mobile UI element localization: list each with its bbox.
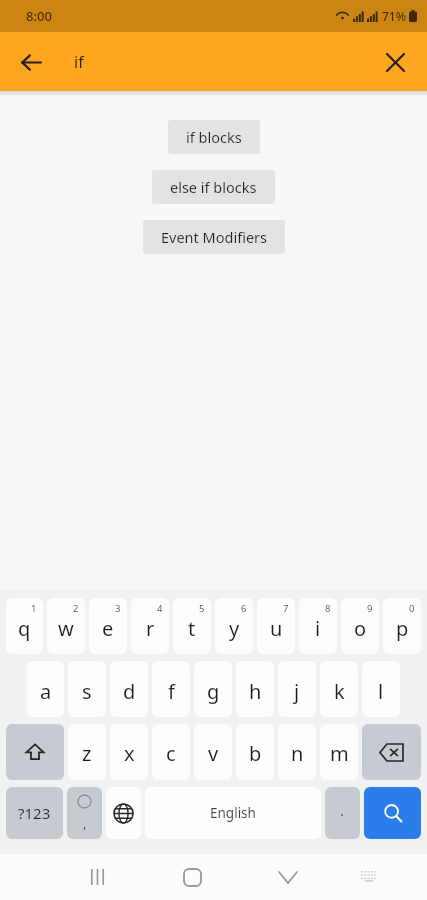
- button[interactable]: Period: [325, 787, 360, 839]
- staticText: Event Modifiers: [161, 227, 267, 247]
- staticText: 8: [325, 602, 331, 615]
- button[interactable]: English: [145, 787, 321, 839]
- button[interactable]: d: [110, 661, 148, 717]
- staticText: 2: [73, 602, 79, 615]
- button[interactable]: w: [47, 598, 85, 654]
- staticText: e: [102, 615, 114, 642]
- staticText: b: [249, 740, 262, 767]
- staticText: o: [354, 615, 367, 642]
- button[interactable]: f: [152, 661, 190, 717]
- button[interactable]: if blocks: [168, 120, 260, 154]
- button[interactable]: q: [6, 598, 43, 654]
- button[interactable]: u: [257, 598, 295, 654]
- staticText: if: [74, 51, 84, 73]
- button[interactable]: h: [236, 661, 274, 717]
- staticText: 5: [199, 602, 205, 615]
- staticText: v: [208, 740, 219, 767]
- button[interactable]: y: [215, 598, 253, 654]
- staticText: 6: [241, 602, 247, 615]
- button[interactable]: c: [152, 724, 190, 780]
- staticText: 7: [283, 602, 289, 615]
- button[interactable]: Clear search: [374, 41, 416, 83]
- button[interactable]: p: [383, 598, 421, 654]
- staticText: 3: [115, 602, 121, 615]
- button[interactable]: o: [341, 598, 379, 654]
- button[interactable]: Event Modifiers: [143, 220, 285, 254]
- button[interactable]: k: [320, 661, 358, 717]
- button[interactable]: r: [131, 598, 169, 654]
- staticText: 9: [367, 602, 373, 615]
- button[interactable]: j: [278, 661, 316, 717]
- staticText: if blocks: [186, 127, 242, 147]
- staticText: u: [270, 615, 283, 642]
- staticText: g: [207, 678, 220, 705]
- button[interactable]: s: [68, 661, 106, 717]
- staticText: ,: [83, 814, 87, 832]
- staticText: English: [210, 804, 256, 822]
- button[interactable]: Recents: [67, 854, 128, 900]
- button[interactable]: Emoji and comma: [67, 787, 102, 839]
- staticText: h: [249, 678, 262, 705]
- button[interactable]: m: [320, 724, 358, 780]
- staticText: q: [18, 615, 31, 642]
- button[interactable]: Shift: [6, 724, 64, 780]
- staticText: d: [123, 678, 136, 705]
- staticText: t: [188, 615, 196, 642]
- button[interactable]: l: [362, 661, 400, 717]
- staticText: i: [315, 615, 321, 642]
- staticText: 8:00: [26, 7, 52, 25]
- staticText: f: [168, 678, 175, 705]
- button[interactable]: a: [27, 661, 64, 717]
- button[interactable]: i: [299, 598, 337, 654]
- staticText: else if blocks: [170, 177, 257, 197]
- button[interactable]: else if blocks: [152, 170, 275, 204]
- staticText: k: [334, 678, 345, 705]
- button[interactable]: Home: [162, 854, 223, 900]
- button[interactable]: z: [68, 724, 106, 780]
- button[interactable]: Backspace: [362, 724, 421, 780]
- button[interactable]: Search: [364, 787, 421, 839]
- button[interactable]: g: [194, 661, 232, 717]
- staticText: m: [330, 740, 349, 767]
- staticText: n: [291, 740, 304, 767]
- staticText: a: [40, 678, 52, 705]
- staticText: l: [378, 678, 384, 705]
- staticText: 4: [157, 602, 163, 615]
- button[interactable]: b: [236, 724, 274, 780]
- staticText: .: [340, 800, 345, 820]
- button[interactable]: t: [173, 598, 211, 654]
- staticText: ?123: [18, 803, 51, 823]
- staticText: 0: [409, 602, 415, 615]
- button[interactable]: e: [89, 598, 127, 654]
- button[interactable]: Keyboard layout: [339, 854, 400, 900]
- staticText: y: [229, 615, 240, 642]
- button[interactable]: Hide keyboard: [257, 854, 318, 900]
- staticText: w: [58, 615, 74, 642]
- staticText: p: [396, 615, 409, 642]
- button[interactable]: Back: [10, 41, 52, 83]
- staticText: x: [124, 740, 135, 767]
- staticText: s: [82, 678, 92, 705]
- staticText: z: [82, 740, 92, 767]
- button[interactable]: x: [110, 724, 148, 780]
- staticText: 71%: [382, 8, 406, 24]
- staticText: 1: [31, 602, 37, 615]
- button[interactable]: v: [194, 724, 232, 780]
- staticText: r: [146, 615, 155, 642]
- staticText: j: [294, 678, 300, 705]
- button[interactable]: Change language: [106, 787, 141, 839]
- button[interactable]: ?123: [6, 787, 63, 839]
- staticText: c: [166, 740, 176, 767]
- button[interactable]: n: [278, 724, 316, 780]
